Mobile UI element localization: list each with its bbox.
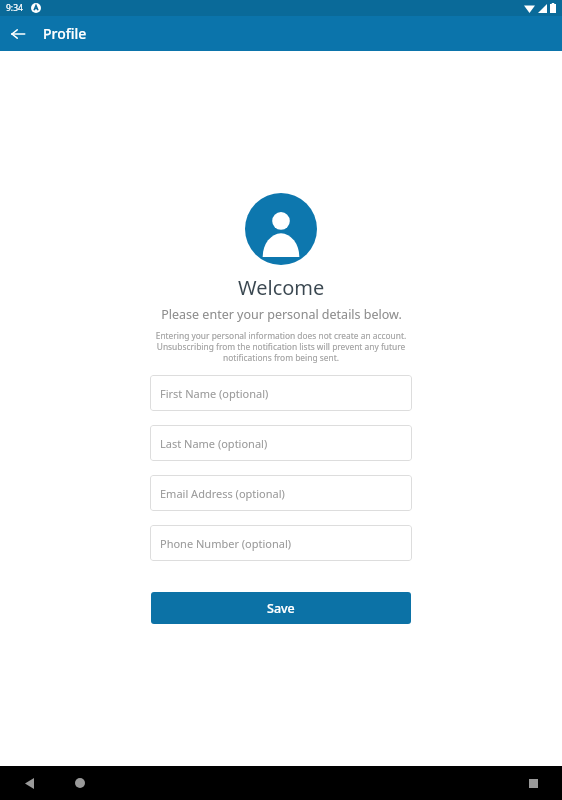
button[interactable]: Last Name (optional) bbox=[150, 425, 412, 461]
staticText: Email Address (optional) bbox=[160, 486, 285, 501]
staticText: Please enter your personal details below… bbox=[161, 306, 402, 323]
button[interactable]: Back bbox=[0, 16, 36, 51]
staticText: Profile bbox=[43, 24, 87, 43]
staticText: Welcome bbox=[238, 274, 325, 301]
button[interactable]: Save bbox=[151, 592, 411, 624]
staticText: 9:34 bbox=[6, 2, 23, 14]
staticText: Phone Number (optional) bbox=[160, 536, 292, 551]
button[interactable]: Phone Number (optional) bbox=[150, 525, 412, 561]
button[interactable]: Back bbox=[14, 768, 44, 798]
button[interactable]: Home bbox=[65, 768, 95, 798]
staticText: Save bbox=[267, 600, 295, 617]
button[interactable]: Email Address (optional) bbox=[150, 475, 412, 511]
button[interactable]: First Name (optional) bbox=[150, 375, 412, 411]
button[interactable]: Recent apps bbox=[518, 768, 548, 798]
staticText: Last Name (optional) bbox=[160, 436, 268, 451]
staticText: First Name (optional) bbox=[160, 386, 269, 401]
staticText: Entering your personal information does … bbox=[146, 330, 416, 363]
